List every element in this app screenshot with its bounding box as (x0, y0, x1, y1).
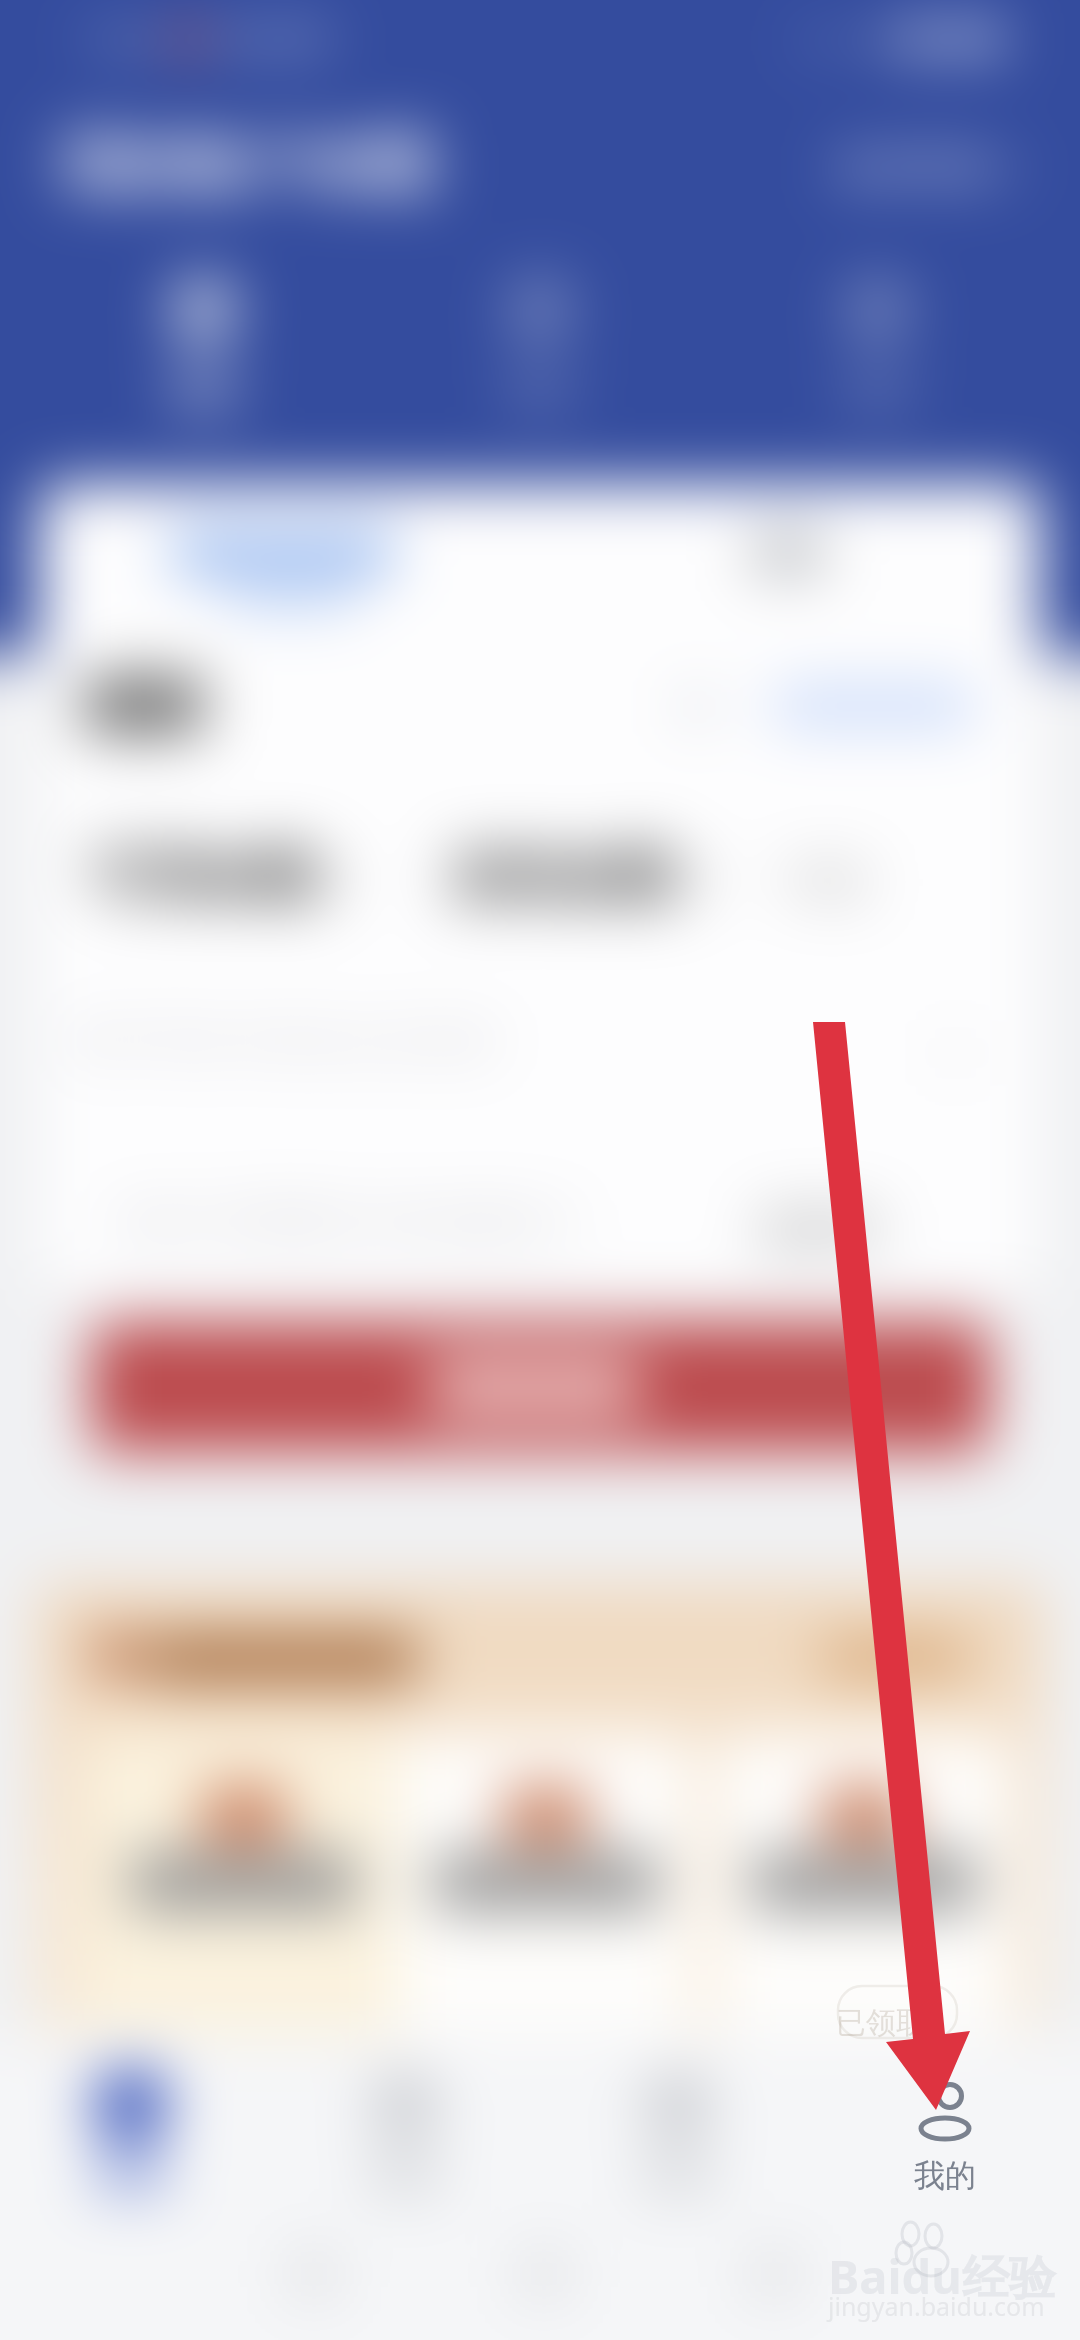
staticText: 我的 (914, 2156, 976, 2195)
staticText: 元 (688, 856, 724, 901)
staticText: 冻结金额 (448, 842, 672, 913)
staticText: 账单明细 > (838, 140, 1022, 192)
staticText: 15:06 (82, 19, 159, 60)
staticText: 可用余额 (90, 842, 314, 913)
staticText: 元 (322, 856, 358, 901)
staticText: 我的账户余额 (60, 126, 432, 204)
staticText: jingyan.baidu.com (828, 2289, 1045, 2323)
staticText: 4G (849, 20, 886, 58)
staticText: 已领取 (836, 2004, 926, 2042)
button[interactable]: 我的 (878, 2064, 1018, 2214)
button[interactable]: 已领取 (822, 1986, 957, 2038)
staticText: 去支付 (756, 1202, 882, 1255)
staticText: Baidu经验 (828, 2244, 1056, 2308)
